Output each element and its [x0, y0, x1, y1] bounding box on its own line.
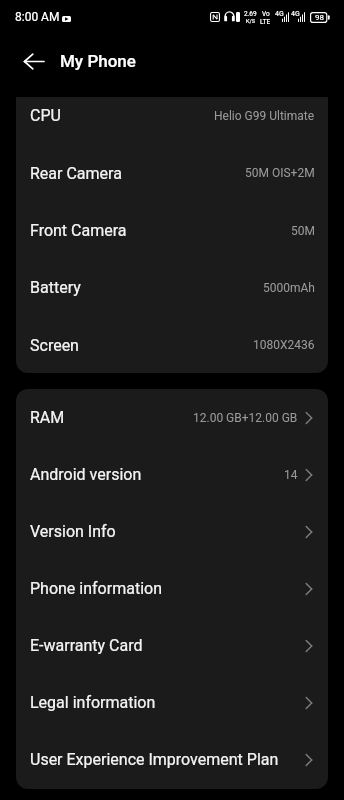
staticText: 14 — [284, 468, 298, 482]
staticText: K/S — [246, 18, 255, 24]
button[interactable]: CPU — [16, 97, 328, 144]
staticText: My Phone — [60, 51, 136, 71]
staticText: 5000mAh — [263, 281, 315, 295]
button[interactable]: Phone information — [16, 560, 328, 617]
staticText: Front Camera — [30, 221, 127, 240]
staticText: Version Info — [30, 522, 116, 541]
button[interactable]: Front Camera — [16, 202, 328, 259]
staticText: Legal information — [30, 693, 156, 712]
staticText: 8:00 AM — [15, 10, 60, 24]
staticText: 98 — [315, 13, 324, 22]
staticText: 1080X2436 — [253, 338, 315, 352]
button[interactable]: Rear Camera — [16, 144, 328, 202]
staticText: Rear Camera — [30, 164, 122, 183]
button[interactable]: Battery — [16, 259, 328, 316]
staticText: 4G — [275, 10, 284, 18]
staticText: 2.69 — [244, 10, 257, 18]
button[interactable]: E-warranty Card — [16, 617, 328, 674]
button[interactable]: Screen — [16, 316, 328, 373]
staticText: User Experience Improvement Plan — [30, 750, 279, 769]
staticText: LTE — [260, 18, 271, 26]
staticText: Vo — [262, 10, 270, 18]
button[interactable]: Version Info — [16, 503, 328, 560]
button[interactable]: Back — [10, 37, 58, 85]
staticText: Android version — [30, 465, 142, 484]
staticText: Battery — [30, 278, 81, 297]
staticText: CPU — [30, 106, 61, 125]
button[interactable]: RAM — [16, 389, 328, 446]
staticText: Helio G99 Ultimate — [214, 109, 315, 123]
staticText: Phone information — [30, 579, 162, 598]
staticText: E-warranty Card — [30, 636, 143, 655]
staticText: Screen — [30, 336, 79, 355]
staticText: 4G — [291, 10, 300, 18]
button[interactable]: User Experience Improvement Plan — [16, 731, 328, 788]
button[interactable]: Legal information — [16, 674, 328, 731]
button[interactable]: Android version — [16, 446, 328, 503]
staticText: RAM — [30, 408, 65, 427]
staticText: 50M OIS+2M — [245, 166, 315, 180]
staticText: 12.00 GB+12.00 GB — [193, 411, 298, 425]
staticText: 50M — [291, 224, 315, 238]
